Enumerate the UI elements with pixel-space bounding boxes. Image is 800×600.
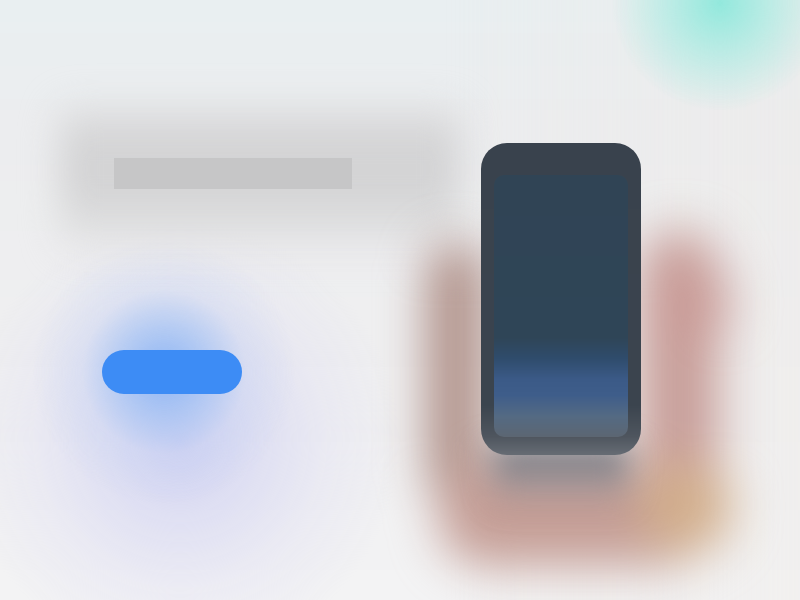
button[interactable] [102,350,242,394]
